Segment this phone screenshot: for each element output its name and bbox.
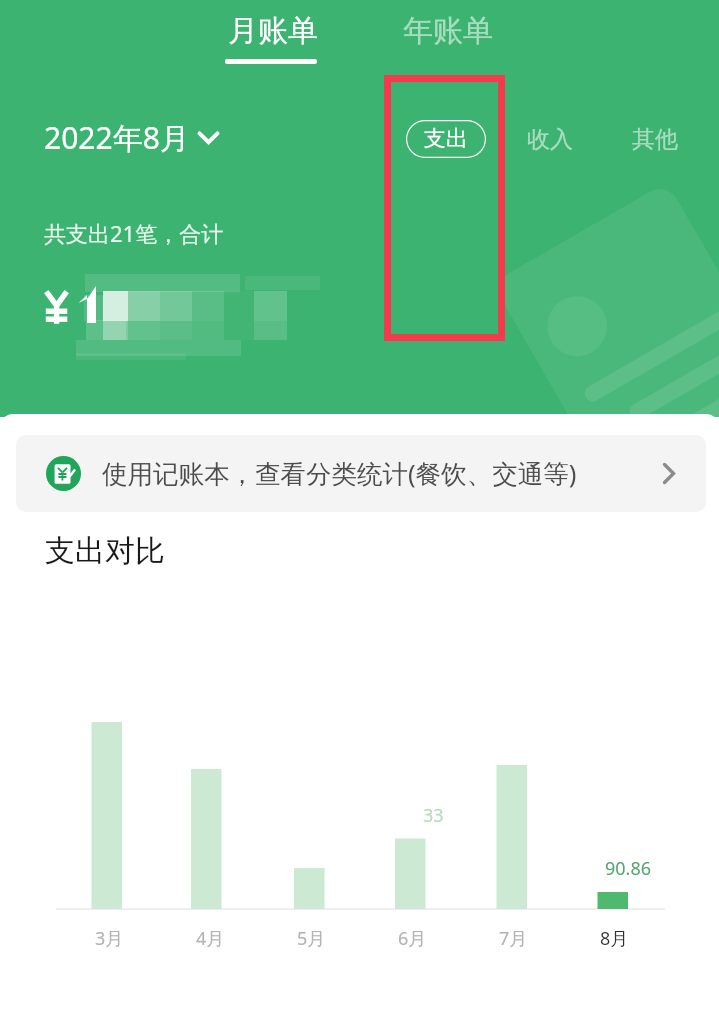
staticText: 支出对比 <box>45 532 165 570</box>
staticText: 年账单 <box>403 12 493 50</box>
staticText: 其他 <box>632 125 678 154</box>
staticText: 收入 <box>527 125 573 154</box>
staticText: 8月 <box>600 926 629 951</box>
staticText: 7月 <box>499 926 528 951</box>
staticText: 5月 <box>297 926 326 951</box>
staticText: 4月 <box>196 926 225 951</box>
button[interactable]: 年账单 <box>395 8 501 54</box>
staticText: 6月 <box>398 926 427 951</box>
staticText: 90.86 <box>605 856 652 881</box>
button[interactable]: 收入 <box>519 119 581 160</box>
staticText: 33 <box>423 803 444 828</box>
button[interactable]: 使用记账本，查看分类统计(餐饮、交通等) <box>16 435 706 512</box>
button[interactable]: 月账单 <box>220 8 326 54</box>
button[interactable]: 支出 <box>406 120 486 158</box>
staticText: 使用记账本，查看分类统计(餐饮、交通等) <box>102 456 577 491</box>
staticText: 共支出21笔，合计 <box>44 218 224 248</box>
button[interactable]: 2022年8月 <box>36 113 227 162</box>
staticText: 2022年8月 <box>44 117 190 158</box>
other: More <box>663 463 675 484</box>
staticText: 支出 <box>424 125 468 153</box>
staticText: 3月 <box>95 926 124 951</box>
button[interactable]: 其他 <box>624 119 686 160</box>
staticText: 月账单 <box>228 12 318 50</box>
